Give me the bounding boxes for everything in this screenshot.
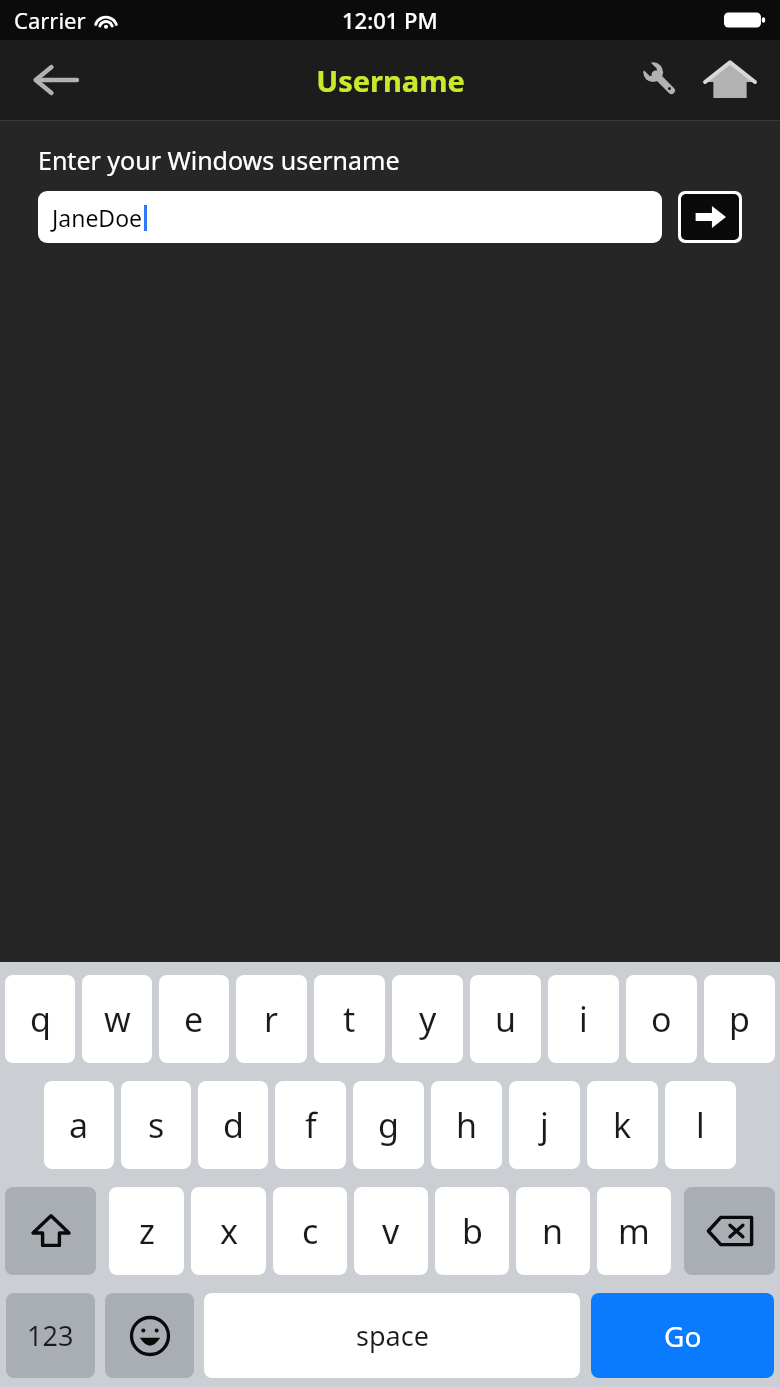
button[interactable]: f: [275, 1081, 346, 1169]
button[interactable]: o: [626, 975, 697, 1063]
staticText: j: [540, 1102, 549, 1148]
button[interactable]: c: [273, 1187, 347, 1275]
button[interactable]: a: [44, 1081, 114, 1169]
staticText: Enter your Windows username: [38, 143, 400, 177]
staticText: d: [223, 1102, 244, 1148]
staticText: s: [148, 1102, 165, 1148]
staticText: Username: [316, 61, 465, 100]
button[interactable]: 123: [6, 1293, 95, 1378]
staticText: l: [696, 1102, 705, 1148]
button[interactable]: m: [597, 1187, 671, 1275]
button[interactable]: r: [236, 975, 307, 1063]
staticText: Go: [664, 1317, 702, 1355]
staticText: c: [302, 1208, 319, 1254]
button[interactable]: Settings: [628, 49, 694, 111]
staticText: q: [30, 996, 51, 1042]
staticText: p: [729, 996, 750, 1042]
button[interactable]: Back: [24, 50, 86, 110]
button[interactable]: b: [435, 1187, 509, 1275]
staticText: e: [184, 996, 204, 1042]
staticText: y: [419, 996, 437, 1042]
button[interactable]: Emoji: [105, 1293, 194, 1378]
staticText: JaneDoe: [52, 202, 143, 233]
staticText: k: [613, 1102, 632, 1148]
staticText: h: [456, 1102, 478, 1148]
staticText: 123: [27, 1317, 74, 1354]
staticText: o: [651, 996, 672, 1042]
staticText: t: [343, 996, 356, 1042]
button[interactable]: t: [314, 975, 385, 1063]
button[interactable]: Go: [591, 1293, 774, 1378]
button[interactable]: p: [704, 975, 775, 1063]
button[interactable]: Submit: [681, 194, 739, 240]
button[interactable]: l: [665, 1081, 736, 1169]
button[interactable]: e: [159, 975, 229, 1063]
button[interactable]: h: [431, 1081, 502, 1169]
staticText: u: [495, 996, 517, 1042]
button[interactable]: i: [548, 975, 619, 1063]
button[interactable]: n: [516, 1187, 590, 1275]
button[interactable]: q: [5, 975, 75, 1063]
staticText: n: [542, 1208, 564, 1254]
button[interactable]: Shift: [5, 1187, 96, 1275]
button[interactable]: w: [82, 975, 152, 1063]
button[interactable]: JaneDoe: [38, 191, 662, 243]
staticText: a: [69, 1102, 89, 1148]
button[interactable]: space: [204, 1293, 580, 1378]
staticText: 12:01 PM: [342, 5, 438, 35]
staticText: b: [462, 1208, 483, 1254]
button[interactable]: Backspace: [684, 1187, 775, 1275]
button[interactable]: u: [470, 975, 541, 1063]
staticText: z: [139, 1208, 155, 1254]
button[interactable]: y: [392, 975, 463, 1063]
button[interactable]: k: [587, 1081, 658, 1169]
staticText: space: [356, 1317, 429, 1354]
staticText: v: [382, 1208, 400, 1254]
button[interactable]: s: [121, 1081, 191, 1169]
button[interactable]: g: [353, 1081, 424, 1169]
button[interactable]: j: [509, 1081, 580, 1169]
button[interactable]: d: [198, 1081, 268, 1169]
staticText: m: [618, 1208, 650, 1254]
staticText: i: [579, 996, 588, 1042]
button[interactable]: x: [191, 1187, 266, 1275]
button[interactable]: z: [109, 1187, 184, 1275]
button[interactable]: Home: [694, 49, 766, 111]
button[interactable]: v: [354, 1187, 428, 1275]
staticText: f: [305, 1102, 317, 1148]
staticText: w: [104, 996, 131, 1042]
staticText: g: [378, 1102, 399, 1148]
staticText: x: [220, 1208, 238, 1254]
staticText: Carrier: [14, 5, 86, 35]
staticText: r: [264, 996, 279, 1042]
